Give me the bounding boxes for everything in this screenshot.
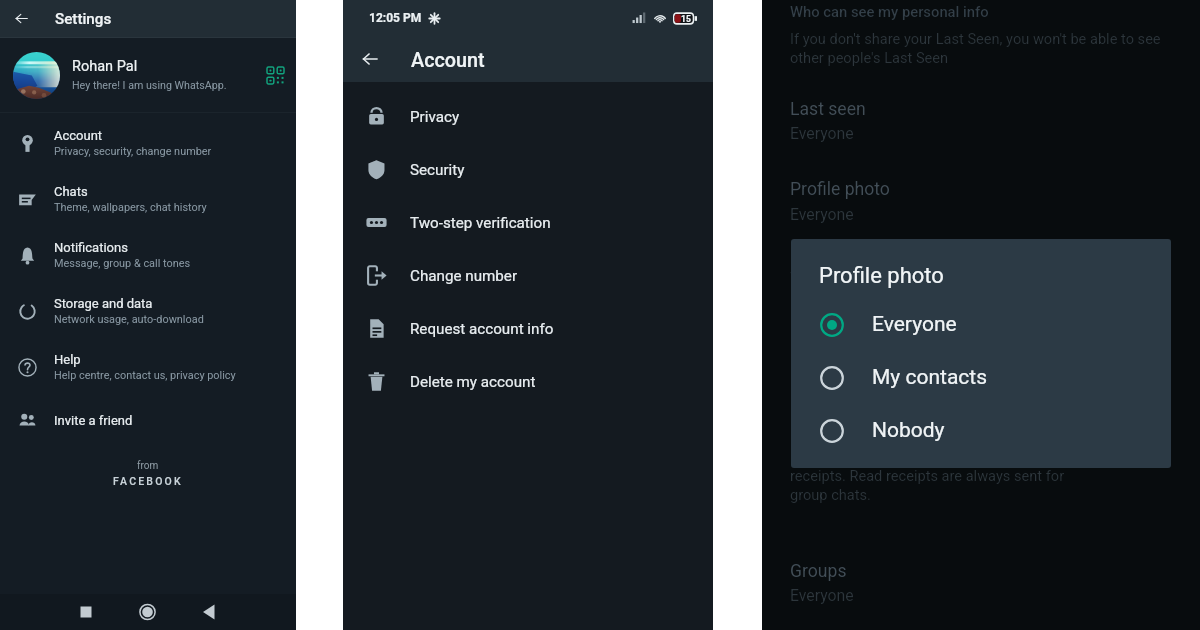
staticText: Groups	[790, 561, 847, 582]
staticText: Everyone	[790, 124, 854, 143]
staticText: Two-step verification	[410, 214, 551, 232]
staticText: Rohan Pal	[72, 58, 138, 75]
button[interactable]: Back	[352, 41, 388, 77]
staticText: My contacts	[872, 365, 988, 390]
button[interactable]: Help	[0, 339, 296, 395]
button[interactable]: Security	[343, 143, 713, 196]
staticText: Everyone	[790, 586, 854, 605]
button[interactable]: Chats	[0, 171, 296, 227]
staticText: Settings	[55, 10, 112, 28]
staticText: Hey there! I am using WhatsApp.	[72, 79, 227, 92]
staticText: Privacy, security, change number	[54, 145, 212, 158]
staticText: Notifications	[54, 240, 128, 255]
staticText: Privacy	[410, 108, 460, 126]
button[interactable]: Privacy	[343, 90, 713, 143]
button[interactable]: Rohan Pal	[0, 38, 296, 112]
staticText: Read receipts	[790, 414, 897, 435]
button[interactable]: Two-step verification	[343, 196, 713, 249]
staticText: Who can see my personal info	[790, 3, 989, 20]
staticText: receipts. Read receipts are always sent …	[790, 467, 1065, 484]
staticText: Invite a friend	[54, 413, 133, 428]
staticText: If turned off, you won't send or receive…	[790, 448, 1073, 465]
staticText: group chats.	[790, 486, 871, 503]
staticText: If you don't share your Last Seen, you w…	[790, 30, 1161, 47]
button[interactable]: My contacts	[791, 351, 1171, 404]
button[interactable]: Storage and data	[0, 283, 296, 339]
staticText: Profile photo	[790, 179, 890, 200]
staticText: Message, group & call tones	[54, 257, 191, 270]
staticText: Theme, wallpapers, chat history	[54, 201, 207, 214]
staticText: Help	[54, 352, 81, 367]
staticText: 12:05 PM	[369, 11, 422, 25]
staticText: Account	[54, 128, 103, 143]
button[interactable]: Everyone	[791, 298, 1171, 351]
staticText: My contacts	[790, 286, 877, 305]
staticText: Everyone	[872, 312, 957, 337]
staticText: from	[137, 460, 159, 472]
button[interactable]: QR code	[258, 58, 292, 92]
staticText: other people's Last Seen	[790, 49, 949, 66]
staticText: 15	[681, 14, 691, 24]
button[interactable]: Request account info	[343, 302, 713, 355]
button[interactable]: Nobody	[791, 404, 1171, 457]
staticText: Profile photo	[819, 263, 944, 289]
staticText: Change number	[410, 267, 518, 285]
button[interactable]: Notifications	[0, 227, 296, 283]
button[interactable]: Account	[0, 115, 296, 171]
staticText: Network usage, auto-download	[54, 313, 204, 326]
staticText: Storage and data	[54, 296, 153, 311]
staticText: Request account info	[410, 320, 554, 338]
staticText: Delete my account	[410, 373, 536, 391]
staticText: Everyone	[790, 205, 854, 224]
button[interactable]: Delete my account	[343, 355, 713, 408]
staticText: FACEBOOK	[113, 475, 183, 487]
staticText: Help centre, contact us, privacy policy	[54, 369, 236, 382]
staticText: Security	[410, 161, 465, 179]
staticText: Status	[790, 260, 841, 281]
staticText: Nobody	[872, 418, 945, 443]
staticText: Chats	[54, 184, 88, 199]
button[interactable]: Change number	[343, 249, 713, 302]
staticText: Last seen	[790, 99, 866, 120]
staticText: Account	[411, 49, 485, 72]
button[interactable]: Back	[4, 1, 39, 36]
button[interactable]: Invite a friend	[0, 395, 296, 445]
